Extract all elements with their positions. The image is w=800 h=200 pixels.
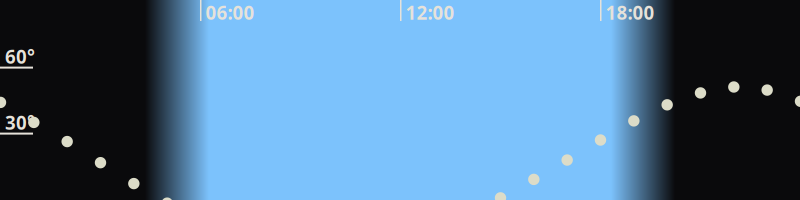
- button[interactable]: Moon altitude chart: [0, 0, 800, 200]
- staticText: 30°: [5, 110, 35, 135]
- staticText: 06:00: [205, 0, 254, 25]
- staticText: 12:00: [405, 0, 454, 25]
- staticText: 60°: [5, 44, 35, 69]
- staticText: 18:00: [605, 0, 654, 25]
